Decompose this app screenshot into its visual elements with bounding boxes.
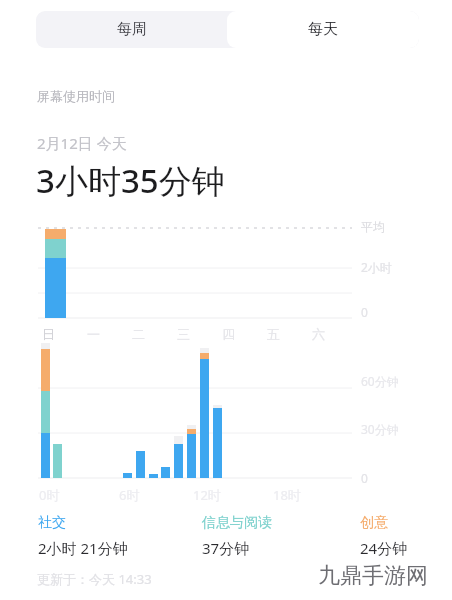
staticText: 30分钟 [361,421,399,437]
staticText: 每周 [117,20,147,39]
staticText: 三 [177,326,190,342]
staticText: 2月12日 今天 [37,133,127,153]
staticText: 3小时35分钟 [36,158,225,203]
staticText: 6时 [119,486,140,504]
button[interactable]: 创意 [360,514,408,558]
staticText: 2小时 21分钟 [38,538,128,558]
staticText: 18时 [273,486,301,504]
staticText: 0 [361,304,368,320]
staticText: 四 [222,326,235,342]
staticText: 0时 [39,486,60,504]
staticText: 更新于：今天 14:33 [37,570,152,588]
staticText: 屏幕使用时间 [37,88,115,104]
staticText: 六 [312,326,325,342]
button[interactable]: 每周 [36,11,227,48]
button[interactable]: 每天 [227,11,419,48]
staticText: 九鼎手游网 [318,562,428,590]
staticText: 日 [42,326,55,342]
staticText: 60分钟 [361,373,399,389]
staticText: 12时 [193,486,221,504]
staticText: 0 [361,470,368,486]
staticText: 一 [87,326,100,342]
staticText: 二 [132,326,145,342]
staticText: 每天 [308,20,338,39]
staticText: 信息与阅读 [202,514,272,532]
staticText: 五 [267,326,280,342]
staticText: 24分钟 [360,538,408,558]
staticText: 社交 [38,514,66,532]
button[interactable]: 社交 [38,514,128,558]
staticText: 平均 [361,219,385,234]
staticText: 37分钟 [202,538,250,558]
button[interactable]: 信息与阅读 [202,514,272,558]
staticText: 创意 [360,514,388,532]
staticText: 2小时 [361,259,392,275]
